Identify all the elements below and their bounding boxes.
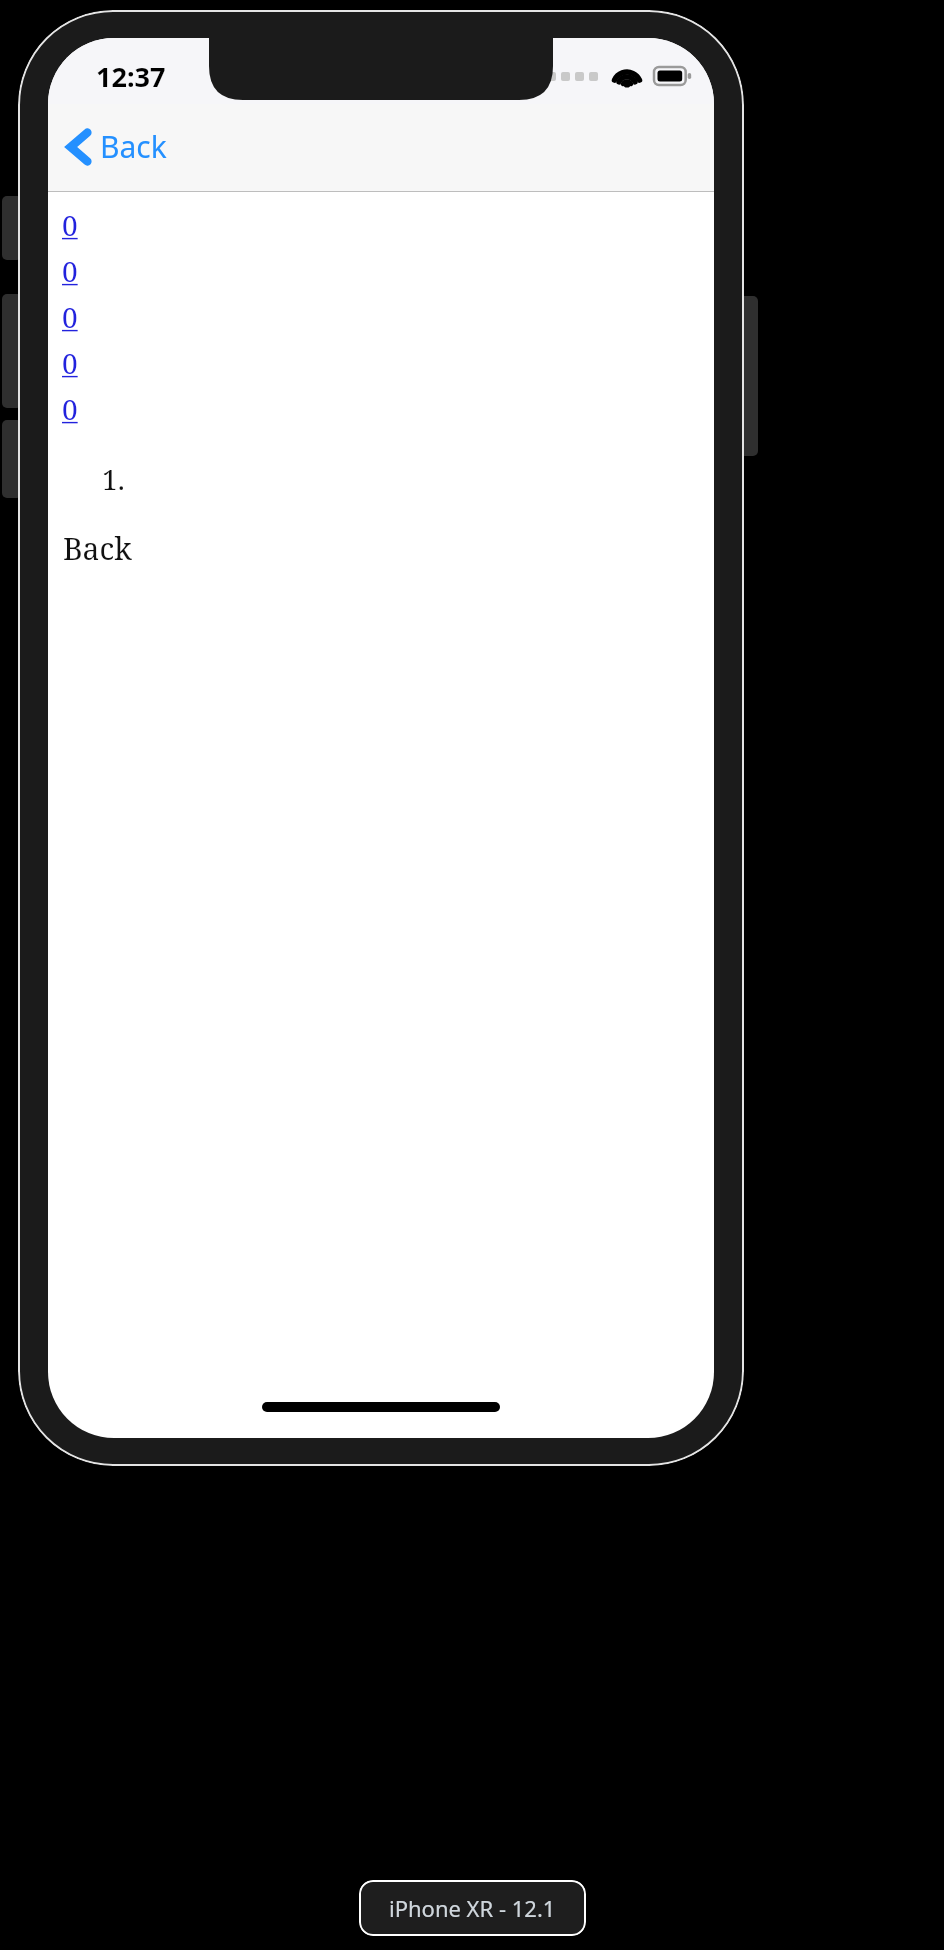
staticText: Back [100,126,167,167]
staticText: iPhone XR - 12.1 [389,1893,556,1923]
button[interactable]: 0 [62,294,78,340]
button[interactable]: 0 [62,202,78,248]
button[interactable]: 0 [62,248,78,294]
button[interactable]: Back [48,116,183,177]
staticText: 0 [62,206,78,244]
button[interactable]: 0 [62,340,78,386]
button[interactable]: 0 [62,386,78,432]
button[interactable]: iPhone XR - 12.1 [359,1880,586,1936]
staticText: 0 [62,252,78,290]
staticText: 0 [62,344,78,382]
staticText: 1. [102,460,125,498]
staticText: 0 [62,390,78,428]
staticText: 12:37 [96,58,166,95]
staticText: 0 [62,298,78,336]
staticText: Back [63,528,132,569]
